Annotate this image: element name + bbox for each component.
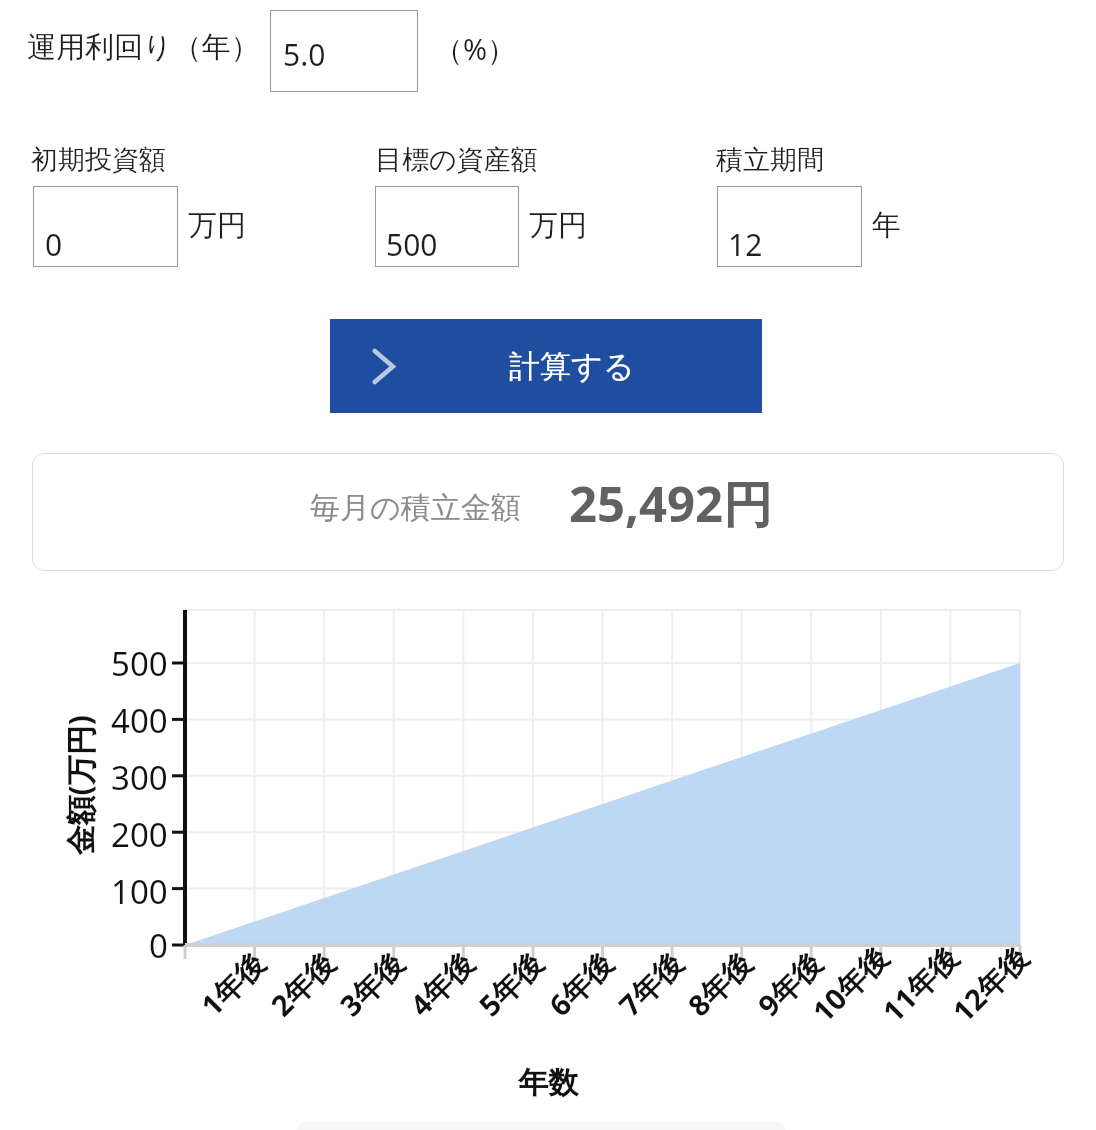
staticText: 8年後 (679, 943, 760, 1025)
staticText: 4年後 (401, 943, 482, 1025)
staticText: 25,492円 (569, 470, 773, 537)
staticText: 積立期間 (716, 143, 824, 177)
staticText: 0 (45, 224, 63, 265)
button[interactable]: Input 5.0 (270, 10, 418, 92)
staticText: 11年後 (873, 937, 967, 1031)
button[interactable]: 計算する (330, 319, 762, 413)
staticText: 1年後 (192, 943, 273, 1025)
staticText: 100 (111, 869, 168, 914)
staticText: 運用利回り（年） (27, 29, 260, 66)
staticText: 300 (111, 755, 168, 800)
staticText: 金額(万円) (58, 714, 98, 855)
staticText: 2年後 (262, 943, 343, 1025)
staticText: 万円 (529, 207, 587, 244)
staticText: 計算する (509, 347, 635, 386)
button[interactable]: 毎月の積立金額 (32, 453, 1064, 571)
staticText: 500 (111, 641, 168, 686)
staticText: 0 (149, 923, 168, 968)
staticText: 7年後 (610, 943, 691, 1025)
staticText: 初期投資額 (31, 143, 166, 177)
staticText: 9年後 (749, 943, 830, 1025)
staticText: 400 (111, 698, 168, 743)
staticText: 年数 (518, 1064, 578, 1102)
staticText: 12年後 (943, 937, 1037, 1031)
staticText: 5年後 (470, 943, 551, 1025)
staticText: 5.0 (283, 34, 326, 75)
staticText: 年 (872, 207, 901, 244)
staticText: 万円 (188, 207, 246, 244)
staticText: 12 (728, 224, 763, 265)
staticText: 10年後 (803, 937, 897, 1031)
staticText: 500 (386, 224, 438, 265)
staticText: 200 (111, 812, 168, 857)
button[interactable]: Input 12 (717, 186, 862, 267)
staticText: 目標の資産額 (375, 143, 538, 177)
button[interactable]: Input 500 (375, 186, 519, 267)
staticText: 毎月の積立金額 (310, 489, 521, 527)
staticText: （%） (434, 29, 517, 69)
button[interactable]: Input 0 (33, 186, 178, 267)
staticText: 6年後 (540, 943, 621, 1025)
staticText: 3年後 (331, 943, 412, 1025)
